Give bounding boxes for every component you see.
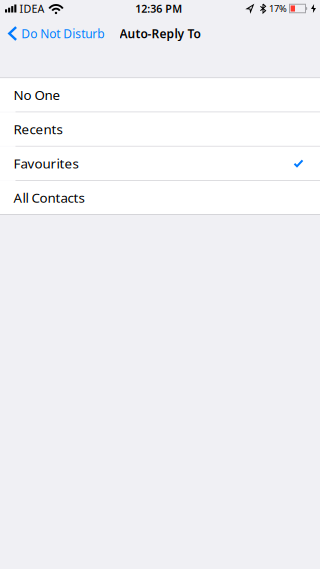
staticText: Auto-Reply To [119,25,200,41]
button[interactable]: No One [0,78,320,112]
button[interactable]: All Contacts [0,181,320,214]
button[interactable]: Favourites [0,147,320,180]
staticText: 17% [269,2,287,15]
staticText: 12:36 PM [135,1,182,16]
staticText: IDEA [19,1,44,16]
staticText: No One [13,86,60,104]
staticText: Recents [13,120,62,138]
staticText: Favourites [13,154,78,172]
staticText: All Contacts [13,189,84,206]
button[interactable]: Back [0,25,104,41]
staticText: Do Not Disturb [21,25,104,41]
button[interactable]: Recents [0,112,320,146]
